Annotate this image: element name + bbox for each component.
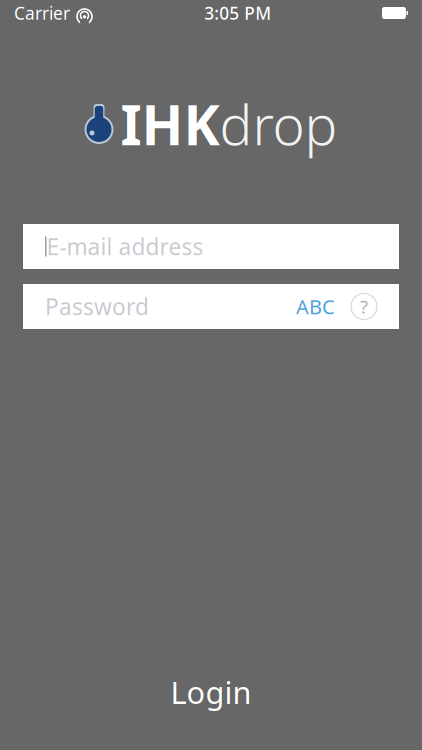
staticText: Carrier	[14, 1, 70, 24]
staticText: ?	[360, 294, 368, 319]
staticText: Password	[45, 291, 149, 321]
button[interactable]: E-mail address	[23, 224, 399, 269]
staticText: 3:05 PM	[204, 1, 271, 24]
staticText: IHK	[120, 88, 219, 160]
staticText: ABC	[296, 293, 335, 320]
staticText: Login	[170, 672, 251, 712]
button[interactable]: Login	[0, 670, 422, 714]
staticText: drop	[219, 88, 337, 160]
button[interactable]: Password	[23, 284, 399, 329]
staticText: E-mail address	[46, 231, 203, 261]
